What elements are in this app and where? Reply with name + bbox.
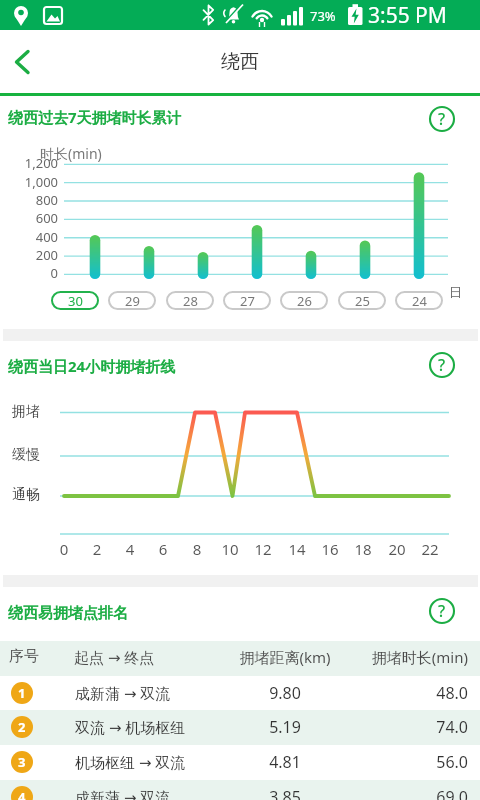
staticText: 拥堵	[12, 403, 40, 421]
staticText: 18	[347, 539, 379, 559]
staticText: 缓慢	[12, 446, 40, 464]
staticText: 9.80	[225, 682, 345, 704]
button[interactable]: 30	[51, 291, 99, 310]
staticText: 600	[0, 209, 58, 227]
button[interactable]: 3	[0, 745, 480, 780]
staticText: 1,200	[0, 154, 58, 172]
staticText: 日	[449, 284, 462, 300]
button[interactable]	[4, 44, 40, 80]
staticText: 0	[48, 539, 80, 559]
staticText: 1	[18, 684, 26, 702]
button[interactable]: ?	[429, 106, 455, 132]
staticText: 绕西	[221, 50, 259, 74]
button[interactable]: 24	[395, 291, 443, 310]
staticText: 48.0	[318, 682, 468, 704]
staticText: 26	[297, 292, 312, 310]
staticText: 序号	[9, 647, 39, 666]
button[interactable]: 28	[166, 291, 214, 310]
staticText: 29	[125, 292, 140, 310]
staticText: 6	[147, 539, 179, 559]
button[interactable]: 4	[0, 780, 480, 800]
staticText: 3:55 PM	[368, 1, 447, 30]
button[interactable]: 29	[108, 291, 156, 310]
staticText: 74.0	[318, 716, 468, 738]
staticText: 4.81	[225, 751, 345, 773]
staticText: 0	[0, 264, 58, 282]
staticText: 22	[414, 539, 446, 559]
staticText: 20	[381, 539, 413, 559]
button[interactable]: 26	[280, 291, 328, 310]
staticText: 通畅	[12, 486, 40, 504]
staticText: 69.0	[318, 786, 468, 800]
staticText: 1,000	[0, 173, 58, 191]
staticText: 400	[0, 228, 58, 246]
button[interactable]: 2	[0, 710, 480, 745]
staticText: 拥堵距离(km)	[225, 647, 345, 667]
staticText: 73%	[310, 7, 336, 25]
staticText: 起点 → 终点	[74, 647, 155, 667]
staticText: 24	[412, 292, 427, 310]
staticText: 成新蒲 → 双流	[75, 787, 171, 800]
staticText: 10	[214, 539, 246, 559]
staticText: 800	[0, 191, 58, 209]
staticText: ?	[438, 600, 446, 622]
staticText: 12	[247, 539, 279, 559]
staticText: 3.85	[225, 786, 345, 800]
staticText: ?	[438, 108, 446, 130]
staticText: 绕西易拥堵点排名	[8, 604, 128, 623]
staticText: 200	[0, 246, 58, 264]
button[interactable]: ?	[429, 352, 455, 378]
staticText: 25	[355, 292, 370, 310]
staticText: 绕西过去7天拥堵时长累计	[8, 107, 182, 127]
staticText: ?	[438, 354, 446, 376]
staticText: 16	[314, 539, 346, 559]
staticText: 30	[68, 292, 83, 310]
button[interactable]: ?	[429, 598, 455, 624]
button[interactable]: 25	[338, 291, 386, 310]
staticText: 2	[18, 718, 26, 736]
staticText: 成新蒲 → 双流	[75, 683, 171, 703]
staticText: 4	[114, 539, 146, 559]
staticText: 时长(min)	[40, 144, 102, 163]
staticText: 14	[281, 539, 313, 559]
staticText: 双流 → 机场枢纽	[75, 717, 186, 737]
staticText: 28	[183, 292, 198, 310]
staticText: 3	[18, 753, 26, 771]
staticText: 27	[240, 292, 255, 310]
staticText: 拥堵时长(min)	[318, 647, 468, 667]
staticText: 56.0	[318, 751, 468, 773]
staticText: 4	[18, 788, 26, 800]
staticText: 8	[181, 539, 213, 559]
staticText: 绕西当日24小时拥堵折线	[8, 356, 176, 376]
staticText: 5.19	[225, 716, 345, 738]
button[interactable]: 1	[0, 676, 480, 711]
button[interactable]: 27	[223, 291, 271, 310]
staticText: 机场枢纽 → 双流	[75, 752, 186, 772]
staticText: 2	[81, 539, 113, 559]
